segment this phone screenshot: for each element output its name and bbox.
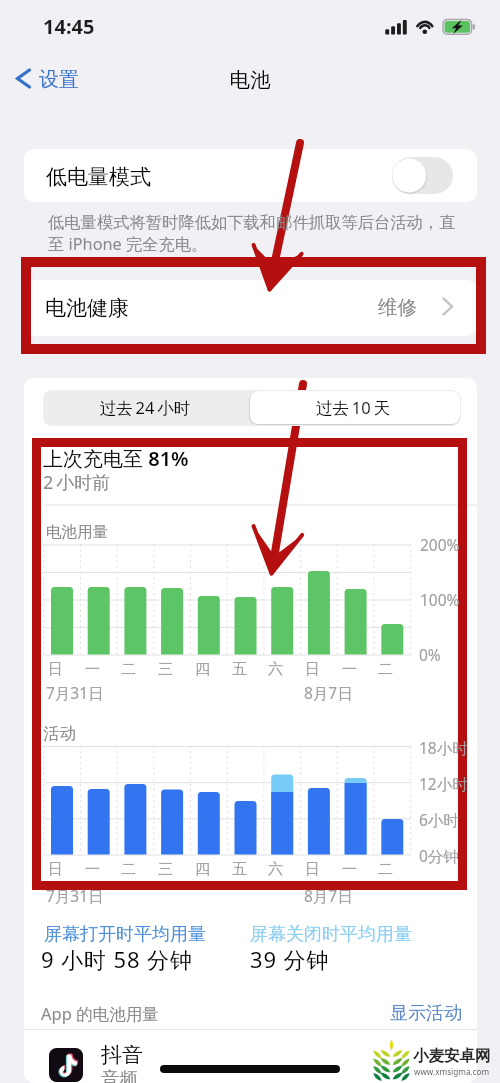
staticText: 音频 <box>101 1067 138 1083</box>
staticText: 100% <box>420 589 460 610</box>
staticText: 抖音 <box>101 1042 143 1068</box>
staticText: 2 小时前 <box>43 470 111 495</box>
staticText: 9 小时 58 分钟 <box>41 944 193 974</box>
staticText: 屏幕关闭时平均用量 <box>250 923 412 946</box>
staticText: 上次充电至 81% <box>43 445 189 472</box>
staticText: 低电量模式 <box>46 164 151 190</box>
staticText: 过去 10 天 <box>253 396 453 419</box>
staticText: 低电量模式将暂时降低如下载和邮件抓取等后台活动，直 <box>48 212 456 233</box>
staticText: 日 <box>305 660 320 679</box>
button[interactable]: 显示活动 <box>378 998 462 1024</box>
button[interactable] <box>24 149 477 202</box>
button[interactable] <box>45 392 248 424</box>
staticText: 屏幕打开时平均用量 <box>44 923 206 946</box>
staticText: 二 <box>378 660 393 679</box>
staticText: 六 <box>268 660 283 679</box>
staticText: 12小时 <box>419 773 468 794</box>
staticText: 一 <box>342 860 357 879</box>
staticText: 至 iPhone 完全充电。 <box>48 233 208 255</box>
staticText: 日 <box>48 660 63 679</box>
staticText: 显示活动 <box>378 1002 462 1025</box>
staticText: 小麦安卓网 <box>413 1046 491 1066</box>
staticText: 四 <box>195 860 210 879</box>
staticText: 0分钟 <box>419 845 459 866</box>
staticText: 三 <box>158 660 173 679</box>
staticText: 五 <box>232 660 247 679</box>
staticText: 二 <box>121 660 136 679</box>
staticText: 0% <box>419 644 441 665</box>
staticText: 维修 <box>378 295 417 320</box>
staticText: 日 <box>48 860 63 879</box>
staticText: www.xmsigma.com <box>414 1066 490 1077</box>
staticText: 18小时 <box>419 737 468 758</box>
button[interactable] <box>24 1029 477 1083</box>
staticText: 二 <box>378 860 393 879</box>
staticText: 6小时 <box>419 809 459 830</box>
button[interactable] <box>24 280 477 336</box>
staticText: 8月7日 <box>304 885 353 906</box>
staticText: 8月7日 <box>304 682 353 703</box>
staticText: 一 <box>342 660 357 679</box>
staticText: 电池用量 <box>46 522 108 542</box>
staticText: 电池健康 <box>45 295 129 321</box>
staticText: 三 <box>158 860 173 879</box>
staticText: 日 <box>305 860 320 879</box>
staticText: App 的电池用量 <box>41 1002 159 1025</box>
staticText: 六 <box>268 860 283 879</box>
staticText: 五 <box>232 860 247 879</box>
staticText: 过去 24 小时 <box>45 396 245 419</box>
staticText: 7月31日 <box>46 682 104 703</box>
button[interactable]: Back to Settings <box>8 58 98 98</box>
staticText: 一 <box>85 860 100 879</box>
button[interactable] <box>250 391 460 424</box>
staticText: 设置 <box>39 67 79 92</box>
staticText: 四 <box>195 660 210 679</box>
staticText: 二 <box>121 860 136 879</box>
staticText: 电池 <box>150 67 350 93</box>
staticText: 200% <box>420 534 460 555</box>
staticText: 7月31日 <box>46 885 104 906</box>
staticText: 活动 <box>43 723 76 744</box>
staticText: 一 <box>85 660 100 679</box>
staticText: 14:45 <box>43 13 95 40</box>
staticText: 39 分钟 <box>250 944 330 974</box>
